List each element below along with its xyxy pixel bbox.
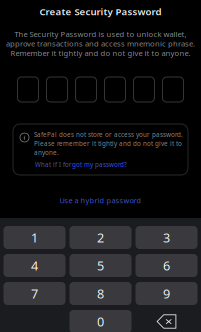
staticText: 6 xyxy=(163,257,170,274)
staticText: 7 xyxy=(31,285,38,302)
button[interactable]: 4 xyxy=(3,254,65,277)
button[interactable]: 1 xyxy=(3,226,65,249)
staticText: 4 xyxy=(31,257,38,274)
staticText: 1 xyxy=(31,229,38,246)
staticText: Use a hybrid password xyxy=(59,196,141,205)
staticText: 0 xyxy=(97,313,104,330)
staticText: SafePal does not store or access your pa… xyxy=(34,130,183,139)
button[interactable]: Use a hybrid password xyxy=(51,193,149,208)
staticText: approve transactions and access mnemonic… xyxy=(6,38,195,49)
button[interactable]: 8 xyxy=(69,282,131,305)
button[interactable]: 0 xyxy=(69,310,131,332)
button[interactable]: 6 xyxy=(135,254,197,277)
button[interactable]: 5 xyxy=(69,254,131,277)
staticText: 9 xyxy=(163,285,170,302)
button[interactable]: What if I forgot my password? xyxy=(20,156,127,168)
staticText: The Security Password is used to unlock … xyxy=(14,29,186,39)
staticText: 3 xyxy=(163,229,170,246)
staticText: 5 xyxy=(97,257,104,274)
button[interactable]: Delete xyxy=(135,310,197,332)
button[interactable]: 7 xyxy=(3,282,65,305)
staticText: anyone. xyxy=(34,148,59,157)
staticText: Please remember it tightly and do not gi… xyxy=(34,139,182,148)
button[interactable]: 3 xyxy=(135,226,197,249)
button[interactable]: 9 xyxy=(135,282,197,305)
staticText: Remember it tightly and do not give it t… xyxy=(10,48,190,58)
staticText: What if I forgot my password? xyxy=(35,160,127,169)
staticText: i xyxy=(23,133,25,141)
staticText: 2 xyxy=(97,229,104,246)
button[interactable]: 2 xyxy=(69,226,131,249)
staticText: Create Security Password xyxy=(39,5,161,18)
staticText: 8 xyxy=(97,285,104,302)
